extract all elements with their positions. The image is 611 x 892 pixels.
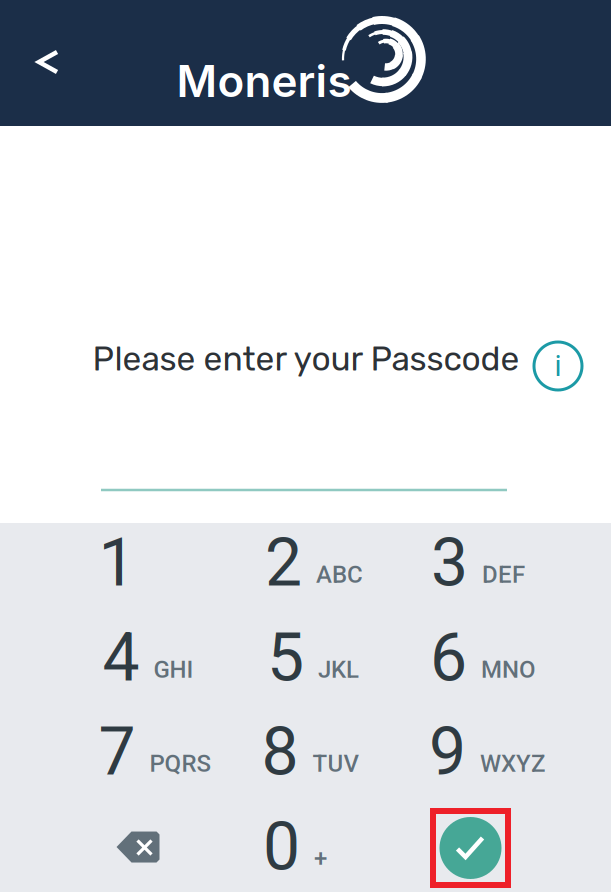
staticText: + bbox=[314, 844, 327, 873]
staticText: 7 bbox=[98, 713, 135, 791]
staticText: JKL bbox=[318, 655, 359, 684]
button[interactable]: 9 bbox=[405, 704, 568, 799]
button[interactable]: 5 bbox=[231, 610, 394, 705]
staticText: TUV bbox=[312, 749, 358, 778]
staticText: MNO bbox=[481, 655, 536, 684]
staticText: 1 bbox=[98, 524, 135, 602]
button[interactable]: 0 bbox=[213, 799, 376, 892]
staticText: WXYZ bbox=[480, 749, 545, 778]
staticText: ABC bbox=[316, 560, 363, 589]
staticText: PQRS bbox=[149, 749, 211, 778]
button[interactable]: 4 bbox=[66, 610, 229, 705]
button[interactable]: Information bbox=[532, 340, 584, 392]
button[interactable]: 2 bbox=[232, 515, 395, 610]
staticText: Please enter your Passcode bbox=[92, 339, 519, 379]
staticText: 6 bbox=[430, 619, 467, 697]
button[interactable]: 3 bbox=[396, 515, 559, 610]
staticText: 3 bbox=[431, 524, 468, 602]
staticText: 5 bbox=[267, 619, 304, 697]
button[interactable]: 8 bbox=[228, 704, 391, 799]
button[interactable]: Delete bbox=[56, 799, 219, 892]
button[interactable]: Back bbox=[16, 27, 80, 97]
staticText: DEF bbox=[482, 560, 525, 589]
staticText: Moneris bbox=[176, 54, 351, 108]
button[interactable]: Confirm bbox=[430, 808, 511, 888]
staticText: i bbox=[554, 349, 561, 383]
staticText: 2 bbox=[265, 524, 302, 602]
staticText: GHI bbox=[153, 655, 193, 684]
staticText: 4 bbox=[102, 619, 139, 697]
staticText: 0 bbox=[263, 808, 300, 886]
button[interactable]: 1 bbox=[35, 515, 198, 610]
button[interactable]: 7 bbox=[73, 704, 236, 799]
button[interactable]: 6 bbox=[401, 610, 564, 705]
staticText: 9 bbox=[429, 713, 466, 791]
staticText: 8 bbox=[261, 713, 298, 791]
